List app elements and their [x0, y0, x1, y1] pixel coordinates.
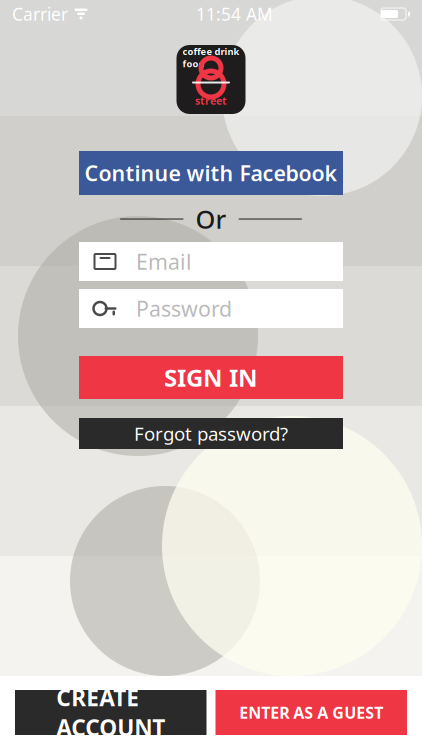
- staticText: coffee drink food: [182, 45, 239, 70]
- staticText: CREATE ACCOUNT: [56, 682, 165, 743]
- button[interactable]: Continue with Facebook: [79, 151, 343, 195]
- button[interactable]: Forgot password?: [79, 418, 343, 449]
- staticText: Or: [195, 202, 226, 236]
- staticText: Password: [136, 294, 232, 323]
- button[interactable]: CREATE ACCOUNT: [15, 690, 206, 735]
- staticText: ENTER AS A GUEST: [239, 702, 383, 723]
- staticText: Carrier: [12, 2, 68, 25]
- button[interactable]: ENTER AS A GUEST: [215, 690, 407, 735]
- staticText: Email: [136, 247, 192, 276]
- staticText: Forgot password?: [134, 421, 288, 446]
- button[interactable]: Password: [79, 289, 343, 328]
- staticText: Continue with Facebook: [84, 159, 337, 187]
- button[interactable]: SIGN IN: [79, 356, 343, 399]
- staticText: SIGN IN: [164, 362, 258, 393]
- staticText: 11:54 AM: [196, 2, 273, 25]
- button[interactable]: Email: [79, 242, 343, 281]
- staticText: street: [195, 93, 227, 108]
